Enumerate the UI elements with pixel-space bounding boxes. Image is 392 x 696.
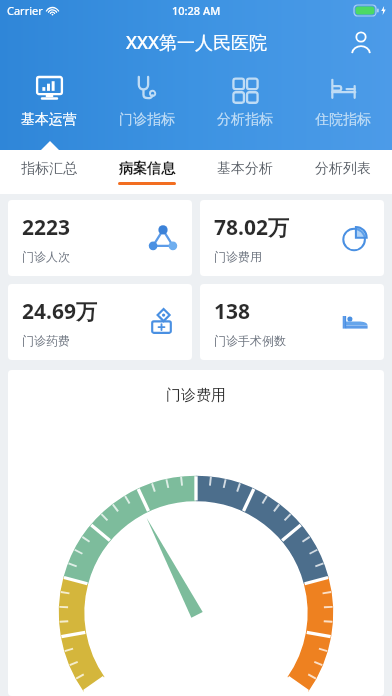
staticText: XXX第一人民医院 [126,30,267,55]
staticText: 138 [214,297,251,326]
staticText: 门诊费用 [166,386,226,405]
staticText: 门诊费用 [214,249,262,264]
staticText: 基本分析 [217,160,273,178]
button[interactable]: 基本分析 [196,150,294,194]
button[interactable]: 分析列表 [294,150,392,194]
staticText: 2223 [22,213,71,242]
button[interactable]: 78.02万 [200,200,384,276]
staticText: 基本运营 [21,111,77,129]
button[interactable]: 门诊指标 [98,66,196,142]
staticText: 门诊人次 [22,249,70,264]
button[interactable]: 138 [200,284,384,360]
staticText: 门诊手术例数 [214,333,286,348]
button[interactable]: 病案信息 [98,150,196,194]
staticText: 住院指标 [315,111,371,129]
staticText: 门诊药费 [22,333,70,348]
button[interactable]: 2223 [8,200,192,276]
button[interactable]: 基本运营 [0,66,98,142]
staticText: Carrier [7,3,43,18]
staticText: 分析列表 [315,160,371,178]
staticText: 24.69万 [22,297,97,326]
staticText: 门诊指标 [119,111,175,129]
button[interactable]: 指标汇总 [0,150,98,194]
button[interactable]: 分析指标 [196,66,294,142]
staticText: 病案信息 [119,160,175,178]
staticText: 10:28 AM [172,3,221,18]
staticText: 指标汇总 [21,160,77,178]
staticText: 分析指标 [217,111,273,129]
button[interactable]: 24.69万 [8,284,192,360]
staticText: 78.02万 [214,213,289,242]
button[interactable]: Profile [344,25,378,59]
button[interactable]: 住院指标 [294,66,392,142]
